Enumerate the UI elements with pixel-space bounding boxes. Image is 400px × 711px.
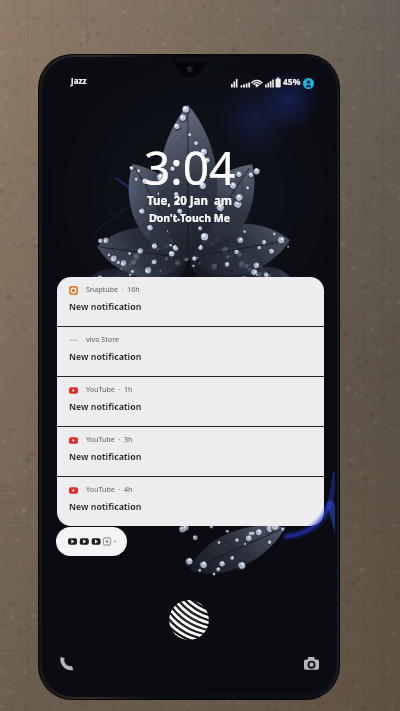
staticText: YouTube · 4h xyxy=(86,485,133,495)
staticText: vivo Store xyxy=(86,335,120,345)
staticText: 3:04 xyxy=(144,136,236,199)
staticText: New notification xyxy=(69,501,142,513)
button[interactable]: Snaptube · 16h xyxy=(57,277,324,326)
staticText: Tue, 20 Jan am xyxy=(147,193,233,209)
staticText: New notification xyxy=(69,451,142,463)
button[interactable]: More notifications xyxy=(56,527,127,556)
staticText: Don't Touch Me xyxy=(149,211,230,225)
button[interactable]: vivo Store xyxy=(57,327,324,376)
button[interactable]: YouTube · 3h xyxy=(57,427,324,476)
button[interactable]: User xyxy=(303,78,314,89)
staticText: Jazz xyxy=(71,75,87,86)
button[interactable]: Phone xyxy=(52,649,80,677)
staticText: New notification xyxy=(69,401,142,413)
staticText: 45% xyxy=(283,76,301,88)
staticText: YouTube · 3h xyxy=(86,435,133,445)
button[interactable]: YouTube · 1h xyxy=(57,377,324,426)
staticText: New notification xyxy=(69,351,142,363)
staticText: New notification xyxy=(69,301,142,313)
staticText: YouTube · 1h xyxy=(86,385,133,395)
button[interactable]: YouTube · 4h xyxy=(57,477,324,526)
button[interactable]: Fingerprint unlock xyxy=(169,600,209,640)
staticText: Snaptube · 16h xyxy=(86,285,140,295)
button[interactable]: Camera xyxy=(297,649,325,677)
